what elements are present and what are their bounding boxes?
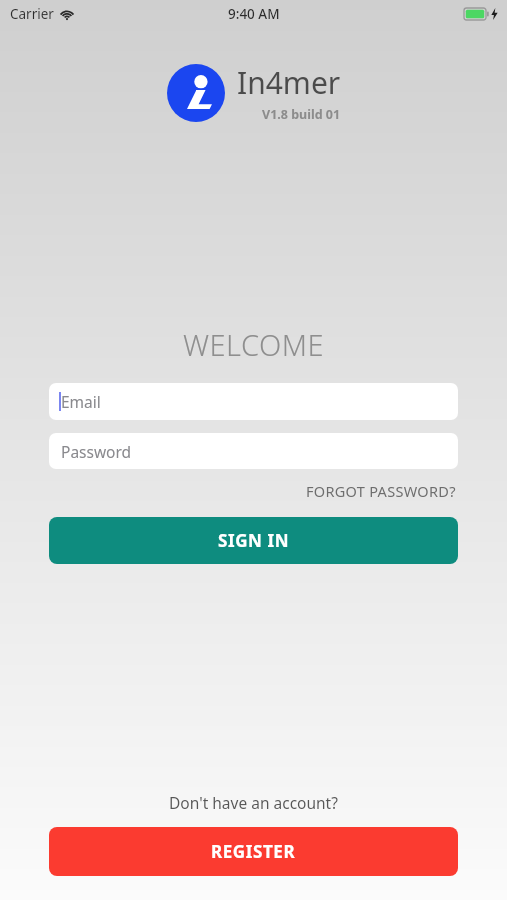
button[interactable]: REGISTER	[49, 827, 458, 876]
staticText: WELCOME	[49, 325, 458, 364]
staticText: Carrier	[10, 5, 54, 23]
staticText: Password	[61, 441, 132, 462]
staticText: FORGOT PASSWORD?	[306, 481, 456, 501]
staticText: In4mer	[237, 62, 341, 103]
button[interactable]: Password	[49, 433, 458, 469]
staticText: REGISTER	[211, 840, 296, 863]
button[interactable]: Email	[49, 383, 458, 420]
button[interactable]: FORGOT PASSWORD?	[304, 478, 458, 504]
staticText: V1.8 build 01	[262, 106, 341, 123]
button[interactable]: SIGN IN	[49, 517, 458, 564]
staticText: SIGN IN	[218, 529, 290, 552]
other: In4mer logo	[167, 64, 225, 122]
staticText: 9:40 AM	[228, 5, 280, 23]
staticText: Don't have an account?	[49, 792, 458, 813]
staticText: Email	[61, 391, 101, 412]
